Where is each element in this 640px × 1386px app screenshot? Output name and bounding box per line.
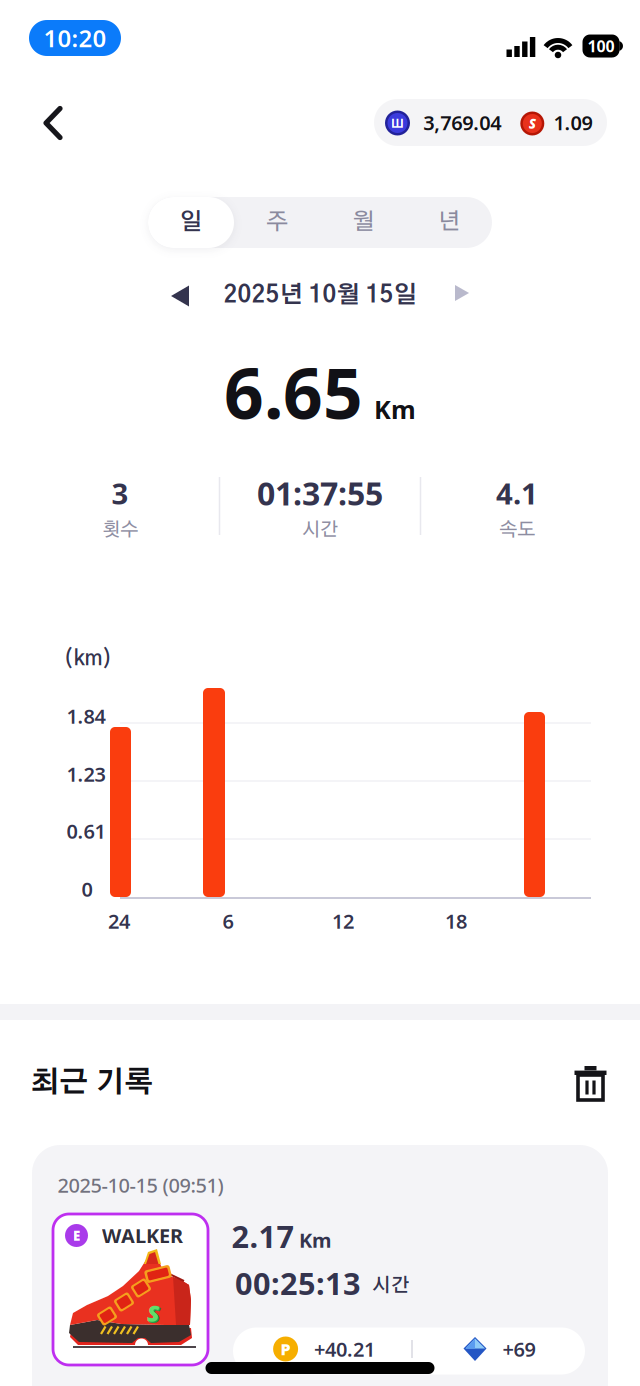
button[interactable]: Record 2025-10-15, 2.17 km [32, 1145, 608, 1386]
button[interactable]: 일 [148, 197, 234, 248]
staticText: 시간 [302, 520, 338, 539]
staticText: S [148, 1299, 160, 1329]
staticText: E [73, 1227, 80, 1244]
staticText: +69 [502, 1336, 535, 1362]
button[interactable]: 월 [320, 197, 406, 248]
staticText: 2.17 [231, 1216, 294, 1256]
staticText: 1.84 [66, 703, 105, 729]
staticText: 0.61 [66, 818, 105, 844]
staticText: 12 [332, 908, 354, 934]
staticText: 일 [179, 211, 202, 234]
staticText: Km [299, 1227, 332, 1253]
staticText: 3,769.04 [423, 109, 501, 136]
button[interactable]: Back [40, 105, 68, 141]
button[interactable]: 년 [406, 197, 492, 248]
staticText: 3 [111, 473, 128, 512]
staticText: 년 [438, 211, 460, 234]
staticText: 4.1 [496, 473, 538, 512]
staticText: 월 [352, 211, 374, 234]
button[interactable]: Delete records [574, 1066, 606, 1102]
staticText: S [529, 115, 536, 132]
staticText: 100 [587, 35, 614, 57]
staticText: 18 [445, 908, 467, 934]
staticText: +40.21 [314, 1336, 375, 1362]
staticText: 2025년 10월 15일 [223, 284, 416, 307]
staticText: 2025-10-15 (09:51) [57, 1172, 223, 1198]
staticText: 24 [108, 908, 130, 934]
staticText: 횟수 [102, 520, 138, 539]
staticText: 01:37:55 [257, 472, 383, 514]
staticText: 최근 기록 [30, 1068, 153, 1097]
staticText: 1.09 [553, 109, 592, 136]
staticText: WALKER [102, 1222, 183, 1249]
staticText: P [281, 1338, 291, 1360]
button[interactable]: 주 [234, 197, 320, 248]
staticText: (km) [63, 648, 112, 669]
staticText: 6 [222, 908, 233, 934]
button[interactable]: Wallet balances [374, 99, 607, 146]
staticText: 6.65 [224, 346, 363, 438]
staticText: 주 [266, 211, 288, 234]
staticText: 속도 [499, 520, 535, 539]
staticText: 시간 [372, 1276, 410, 1295]
staticText: 10:20 [43, 22, 106, 54]
staticText: 1.23 [66, 761, 105, 787]
staticText: Km [374, 392, 416, 426]
button[interactable]: Next day [455, 285, 469, 301]
staticText: Ш [391, 115, 404, 131]
staticText: 0 [81, 876, 92, 902]
button[interactable]: Previous day [171, 285, 189, 306]
staticText: 00:25:13 [235, 1263, 361, 1303]
button[interactable]: Time, personal hotspot active [29, 20, 121, 56]
staticText: S [147, 1298, 159, 1328]
